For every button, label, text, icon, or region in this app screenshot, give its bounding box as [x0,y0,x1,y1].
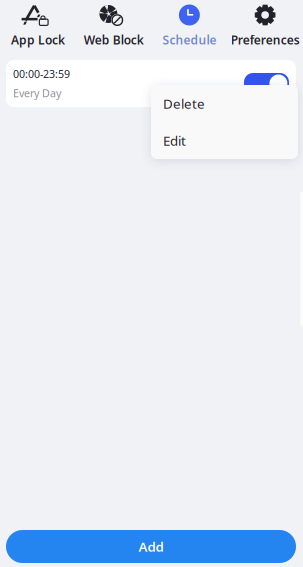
staticText: Add [138,538,163,555]
button[interactable]: App Lock [0,0,76,52]
button[interactable]: Schedule [151,0,227,52]
button[interactable]: Delete [151,85,298,122]
staticText: Every Day [13,86,61,100]
staticText: Web Block [84,32,144,48]
staticText: App Lock [11,32,65,48]
staticText: Delete [163,95,205,112]
staticText: Preferences [231,32,300,48]
button[interactable]: Preferences [227,0,303,52]
button[interactable]: Web Block [76,0,152,52]
staticText: 00:00-23:59 [13,67,70,81]
staticText: Schedule [162,32,216,48]
button[interactable]: Add [6,530,296,563]
button[interactable]: Edit [151,122,298,159]
staticText: Edit [163,132,186,149]
